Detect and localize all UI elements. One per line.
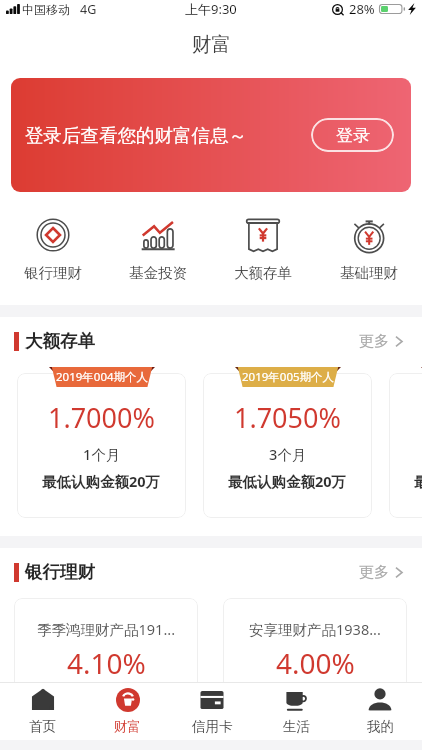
button[interactable]: 生活 [254,683,338,740]
staticText: 4.00% [276,644,355,682]
button[interactable]: 季季鸿理财产品191... [14,598,198,718]
staticText: 28% [349,0,375,18]
button[interactable]: 安享理财产品1938... [223,598,407,718]
staticText: 上午9:30 [185,0,237,18]
staticText: 财富 [192,32,231,57]
staticText: 登录后查看您的财富信息～ [25,124,247,147]
staticText: 1个月 [83,444,121,464]
button[interactable]: 更多 [359,563,403,582]
staticText: 3个月 [269,444,307,464]
button[interactable]: 财富 [85,683,170,740]
staticText: 2019年005期个人 [242,369,335,385]
staticText: 基金投资 [129,264,187,282]
staticText: 1.7000% [48,399,155,436]
staticText: 安享理财产品1938... [249,619,381,639]
button[interactable]: 银行理财 [0,218,105,282]
staticText: 最低认购金额20万 [42,471,161,491]
button[interactable]: 首页 [0,683,85,740]
staticText: 更多 [359,563,389,582]
staticText: 生活 [283,718,310,735]
staticText: 最低认购金额20万 [228,471,347,491]
staticText: 最低认购金额20万 [414,471,422,491]
staticText: 4G [80,1,97,18]
button[interactable]: 1.7050% [203,373,372,518]
staticText: 我的 [367,718,394,735]
staticText: 4.10% [67,644,146,682]
button[interactable]: 大额存单 [210,218,316,282]
button[interactable]: 1.8000% [389,373,422,518]
staticText: 财富 [114,718,141,735]
button[interactable]: 我的 [338,683,422,740]
staticText: 2019年004期个人 [56,369,149,385]
staticText: 大额存单 [234,264,292,282]
staticText: 更多 [359,332,389,351]
button[interactable]: 1.7000% [17,373,186,518]
staticText: 银行理财 [25,561,95,583]
staticText: 大额存单 [25,330,95,352]
button[interactable]: 登录 [311,118,394,152]
button[interactable]: 基础理财 [316,218,422,282]
staticText: 信用卡 [192,718,233,735]
staticText: 基础理财 [340,264,398,282]
staticText: 中国移动 [22,2,70,17]
button[interactable]: 登录后查看您的财富信息～ [11,78,411,192]
staticText: 季季鸿理财产品191... [37,619,176,639]
button[interactable]: 更多 [359,332,403,351]
staticText: 首页 [29,718,56,735]
staticText: 银行理财 [24,264,82,282]
staticText: 登录 [336,125,370,146]
button[interactable]: 基金投资 [105,218,210,282]
staticText: 1.7050% [234,399,341,436]
button[interactable]: 信用卡 [170,683,254,740]
